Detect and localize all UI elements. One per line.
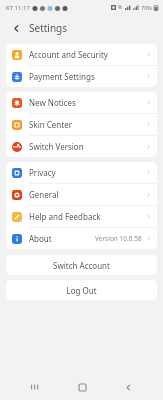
- staticText: Version 10.6.58: [95, 234, 142, 243]
- staticText: Skin Center: [29, 119, 72, 130]
- button[interactable]: Back: [117, 376, 139, 398]
- button[interactable]: Back: [7, 19, 25, 37]
- button[interactable]: Payment Settings: [6, 66, 157, 87]
- staticText: Payment Settings: [29, 71, 95, 82]
- button[interactable]: About: [6, 228, 157, 249]
- button[interactable]: Home: [71, 376, 93, 398]
- button[interactable]: Log Out: [6, 280, 157, 300]
- staticText: Help and Feedback: [29, 211, 101, 222]
- button[interactable]: Account and Security: [6, 44, 157, 65]
- button[interactable]: Privacy: [6, 162, 157, 183]
- staticText: New Notices: [29, 97, 76, 108]
- staticText: Settings: [29, 21, 68, 35]
- button[interactable]: Switch Account: [6, 255, 157, 275]
- button[interactable]: Recents: [24, 376, 46, 398]
- staticText: Switch Version: [29, 141, 84, 152]
- button[interactable]: Switch Version: [6, 136, 157, 157]
- button[interactable]: Help and Feedback: [6, 206, 157, 227]
- staticText: Switch Account: [53, 260, 110, 271]
- staticText: About: [29, 233, 52, 244]
- button[interactable]: New Notices: [6, 92, 157, 113]
- staticText: Account and Security: [29, 49, 108, 60]
- staticText: %: [118, 4, 123, 11]
- staticText: Privacy: [29, 167, 56, 178]
- button[interactable]: Skin Center: [6, 114, 157, 135]
- staticText: 70%: [141, 4, 152, 11]
- button[interactable]: General: [6, 184, 157, 205]
- staticText: KT 11:17: [6, 4, 30, 12]
- staticText: Log Out: [66, 285, 97, 296]
- staticText: General: [29, 189, 59, 200]
